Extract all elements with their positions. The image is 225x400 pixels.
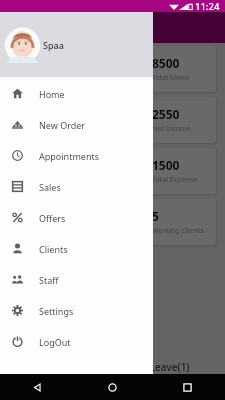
button[interactable]: Home: [75, 374, 150, 400]
button[interactable]: 2550: [9, 97, 216, 143]
staticText: 1500: [152, 157, 180, 173]
staticText: Working Clients: [152, 226, 204, 236]
staticText: Sales: [39, 181, 61, 193]
staticText: LogOut: [39, 336, 71, 348]
staticText: Appointments: [39, 150, 100, 162]
staticText: Net Income: [152, 124, 191, 134]
staticText: 5: [152, 208, 159, 224]
staticText: Clients: [39, 243, 68, 255]
button[interactable]: 5: [9, 199, 216, 245]
button[interactable]: Offers: [0, 202, 153, 233]
button[interactable]: Recent apps: [150, 374, 225, 400]
staticText: Offers: [39, 212, 66, 224]
button[interactable]: Sales: [0, 171, 153, 202]
staticText: New Order: [39, 119, 86, 131]
button[interactable]: Back: [0, 374, 75, 400]
staticText: Home: [39, 88, 65, 100]
button[interactable]: Clients: [0, 233, 153, 264]
staticText: Settings: [39, 305, 74, 317]
staticText: Spaa: [43, 39, 64, 51]
button[interactable]: On Leave(1): [107, 360, 215, 374]
button[interactable]: 1500: [9, 148, 216, 194]
staticText: Total Expense: [152, 175, 198, 185]
button[interactable]: LogOut: [0, 326, 153, 357]
button[interactable]: Appointments: [0, 140, 153, 171]
button[interactable]: Settings: [0, 295, 153, 326]
button[interactable]: Home: [0, 78, 153, 109]
staticText: On Leave(1): [133, 360, 190, 374]
staticText: Staff: [39, 274, 59, 286]
staticText: 11:24: [195, 0, 220, 12]
staticText: 2550: [152, 106, 180, 122]
button[interactable]: New Order: [0, 109, 153, 140]
button[interactable]: Staff: [0, 264, 153, 295]
staticText: Total Saved: [152, 73, 190, 83]
staticText: 8500: [152, 55, 180, 71]
button[interactable]: 8500: [9, 46, 216, 92]
button[interactable]: Open navigation drawer: [8, 20, 24, 36]
